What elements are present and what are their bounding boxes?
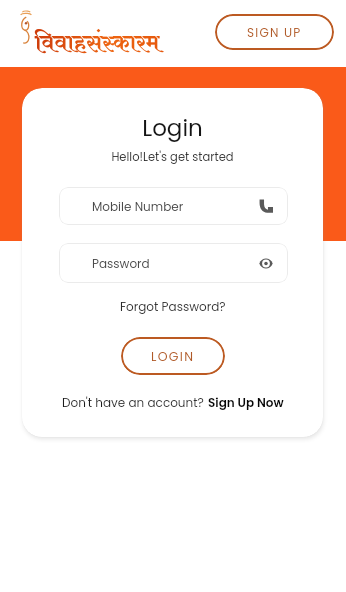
staticText: विवाहसंस्कारम — [35, 24, 160, 65]
other: Phone — [259, 199, 273, 213]
other: Show password — [259, 257, 273, 270]
staticText: Login — [22, 112, 323, 144]
staticText: Hello!Let's get started — [22, 149, 323, 165]
staticText: Don't have an account? — [62, 394, 208, 411]
button[interactable]: LOGIN — [121, 337, 225, 375]
button[interactable]: Password — [59, 243, 288, 283]
staticText: Password — [92, 255, 150, 272]
button[interactable]: Forgot Password? — [116, 296, 230, 317]
staticText: LOGIN — [151, 348, 195, 365]
staticText: Mobile Number — [92, 198, 184, 215]
button[interactable]: Sign Up Now — [208, 394, 284, 411]
button[interactable]: Mobile Number — [59, 187, 288, 225]
button[interactable]: SIGN UP — [215, 14, 334, 50]
staticText: SIGN UP — [247, 24, 302, 41]
